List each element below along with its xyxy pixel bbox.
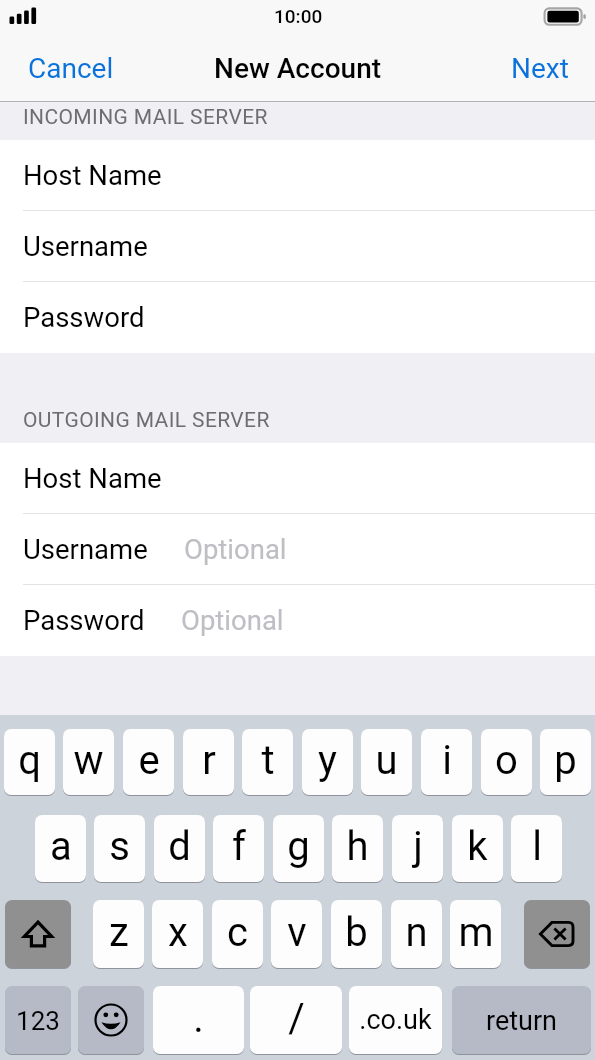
staticText: .co.uk	[359, 1004, 432, 1036]
staticText: x	[168, 909, 188, 956]
staticText: Host Name	[23, 462, 162, 494]
button[interactable]: d	[154, 815, 205, 882]
staticText: n	[405, 909, 428, 956]
button[interactable]: c	[212, 900, 263, 968]
button[interactable]: w	[63, 729, 114, 795]
staticText: i	[442, 737, 452, 784]
button[interactable]: u	[361, 729, 412, 795]
staticText: w	[73, 737, 104, 784]
button[interactable]: p	[540, 729, 591, 795]
staticText: r	[202, 737, 216, 784]
button[interactable]: x	[152, 900, 203, 968]
staticText: q	[18, 737, 41, 784]
staticText: Next	[511, 52, 569, 85]
staticText: k	[467, 823, 488, 870]
button[interactable]: n	[391, 900, 442, 968]
button[interactable]: z	[93, 900, 144, 968]
staticText: g	[287, 823, 310, 870]
button[interactable]: g	[273, 815, 324, 882]
staticText: Optional	[181, 604, 284, 636]
button[interactable]: a	[35, 815, 86, 882]
staticText: h	[346, 823, 369, 870]
staticText: Password	[23, 301, 145, 333]
staticText: u	[375, 737, 398, 784]
staticText: Optional	[184, 533, 287, 565]
button[interactable]: Password	[0, 585, 595, 656]
button[interactable]: /	[250, 986, 342, 1054]
staticText: Password	[23, 604, 145, 636]
button[interactable]: l	[511, 815, 562, 882]
button[interactable]: 123	[5, 986, 71, 1054]
button[interactable]: Backspace	[524, 900, 590, 968]
staticText: p	[554, 737, 577, 784]
button[interactable]: Host Name	[0, 140, 595, 211]
button[interactable]: Cancel	[0, 44, 142, 93]
staticText: v	[287, 909, 307, 956]
staticText: a	[50, 823, 72, 870]
button[interactable]: s	[94, 815, 145, 882]
button[interactable]: b	[331, 900, 382, 968]
staticText: Username	[23, 230, 148, 262]
staticText: Host Name	[23, 159, 162, 191]
staticText: z	[109, 909, 129, 956]
button[interactable]: i	[421, 729, 472, 795]
button[interactable]: q	[4, 729, 55, 795]
button[interactable]: t	[242, 729, 293, 795]
button[interactable]: o	[481, 729, 532, 795]
button[interactable]: Next	[485, 44, 595, 93]
button[interactable]: Password	[0, 282, 595, 353]
staticText: Username	[23, 533, 148, 565]
staticText: c	[227, 909, 248, 956]
staticText: return	[486, 1005, 557, 1037]
staticText: f	[232, 823, 246, 870]
button[interactable]: k	[452, 815, 503, 882]
staticText: o	[495, 737, 518, 784]
button[interactable]: .co.uk	[349, 986, 442, 1054]
button[interactable]: f	[213, 815, 264, 882]
staticText: .	[193, 995, 204, 1042]
button[interactable]: m	[450, 900, 501, 968]
staticText: Cancel	[28, 52, 114, 85]
staticText: /	[288, 995, 305, 1042]
button[interactable]: Shift	[5, 900, 71, 968]
staticText: d	[168, 823, 191, 870]
staticText: New Account	[214, 52, 382, 85]
staticText: e	[138, 737, 160, 784]
button[interactable]: r	[183, 729, 234, 795]
staticText: t	[261, 737, 275, 784]
button[interactable]: Host Name	[0, 443, 595, 514]
button[interactable]: Username	[0, 514, 595, 585]
staticText: s	[109, 823, 130, 870]
staticText: OUTGOING MAIL SERVER	[23, 408, 270, 433]
button[interactable]: Emoji	[78, 986, 144, 1054]
button[interactable]: e	[123, 729, 174, 795]
staticText: j	[413, 823, 423, 870]
staticText: INCOMING MAIL SERVER	[23, 105, 268, 130]
staticText: 10:00	[274, 5, 323, 27]
button[interactable]: return	[452, 986, 591, 1054]
button[interactable]: h	[332, 815, 383, 882]
button[interactable]: .	[153, 986, 244, 1054]
button[interactable]: j	[392, 815, 443, 882]
staticText: y	[318, 737, 337, 784]
staticText: l	[532, 823, 542, 870]
staticText: 123	[16, 1006, 60, 1036]
staticText: m	[458, 909, 494, 956]
button[interactable]: v	[271, 900, 322, 968]
staticText: b	[345, 909, 368, 956]
button[interactable]: Username	[0, 211, 595, 282]
button[interactable]: y	[302, 729, 353, 795]
